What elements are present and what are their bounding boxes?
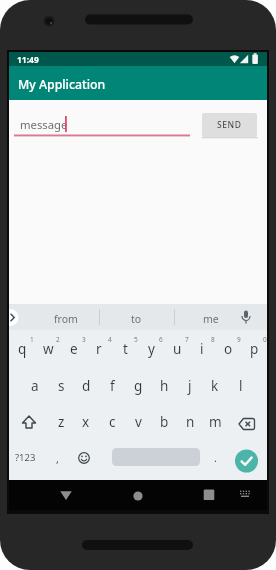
button[interactable]: a bbox=[20, 375, 50, 397]
staticText: me bbox=[203, 312, 219, 326]
staticText: z bbox=[58, 413, 65, 431]
button[interactable]: j bbox=[175, 375, 205, 397]
button[interactable]: 7 bbox=[172, 328, 202, 350]
staticText: 8 bbox=[211, 335, 215, 344]
staticText: 1 bbox=[30, 335, 34, 344]
button[interactable]: 2 bbox=[43, 328, 73, 350]
staticText: k bbox=[211, 377, 219, 395]
staticText: from bbox=[54, 312, 78, 326]
staticText: , bbox=[56, 451, 59, 466]
staticText: f bbox=[110, 377, 115, 395]
staticText: 4 bbox=[108, 335, 112, 344]
button[interactable]: u bbox=[162, 338, 192, 360]
staticText: message bbox=[20, 117, 68, 132]
button[interactable]: x bbox=[71, 411, 101, 433]
staticText: o bbox=[224, 340, 233, 358]
button[interactable]: s bbox=[46, 375, 76, 397]
button[interactable]: , bbox=[42, 447, 72, 469]
staticText: 7 bbox=[185, 335, 189, 344]
button[interactable]: ?123 bbox=[10, 446, 40, 468]
staticText: s bbox=[58, 377, 65, 395]
staticText: b bbox=[160, 413, 169, 431]
staticText: c bbox=[109, 413, 116, 431]
button[interactable]: SEND bbox=[202, 113, 257, 137]
staticText: My Application bbox=[18, 76, 106, 93]
staticText: x bbox=[82, 413, 90, 431]
staticText: . bbox=[214, 450, 217, 465]
button[interactable]: k bbox=[200, 375, 230, 397]
staticText: u bbox=[173, 340, 182, 358]
staticText: d bbox=[82, 377, 91, 395]
staticText: 11:49 bbox=[17, 54, 39, 66]
button[interactable]: q bbox=[7, 338, 37, 360]
staticText: w bbox=[43, 340, 54, 358]
staticText: g bbox=[134, 377, 143, 395]
button[interactable]: 8 bbox=[198, 328, 228, 350]
staticText: p bbox=[250, 340, 259, 358]
button[interactable]: d bbox=[71, 375, 101, 397]
button[interactable]: 3 bbox=[69, 328, 99, 350]
staticText: 2 bbox=[56, 335, 60, 344]
staticText: 9 bbox=[237, 335, 241, 344]
button[interactable]: 1 bbox=[17, 328, 47, 350]
staticText: m bbox=[209, 413, 222, 431]
staticText: 5 bbox=[134, 335, 138, 344]
staticText: 6 bbox=[159, 335, 163, 344]
staticText: 0 bbox=[263, 335, 267, 344]
button[interactable]: g bbox=[123, 375, 153, 397]
staticText: to bbox=[131, 312, 142, 326]
staticText: y bbox=[148, 340, 155, 358]
button[interactable]: l bbox=[226, 375, 256, 397]
button[interactable]: e bbox=[59, 338, 89, 360]
button[interactable]: 5 bbox=[121, 328, 151, 350]
button[interactable]: h bbox=[149, 375, 179, 397]
button[interactable]: 0 bbox=[250, 328, 276, 350]
staticText: h bbox=[160, 377, 169, 395]
staticText: n bbox=[186, 413, 195, 431]
button[interactable] bbox=[235, 450, 258, 473]
staticText: 3 bbox=[82, 335, 86, 344]
staticText: e bbox=[70, 340, 78, 358]
staticText: i bbox=[200, 340, 204, 358]
button[interactable]: m bbox=[200, 411, 230, 433]
button[interactable]: z bbox=[46, 411, 76, 433]
button[interactable] bbox=[231, 480, 261, 510]
button[interactable]: 6 bbox=[146, 328, 176, 350]
staticText: a bbox=[31, 377, 39, 395]
button[interactable]: r bbox=[84, 338, 114, 360]
staticText: SEND bbox=[217, 119, 242, 131]
button[interactable]: b bbox=[149, 411, 179, 433]
staticText: v bbox=[135, 413, 142, 431]
staticText: q bbox=[18, 340, 27, 358]
button[interactable]: i bbox=[187, 338, 217, 360]
staticText: t bbox=[123, 340, 128, 358]
button[interactable]: f bbox=[97, 375, 127, 397]
button[interactable] bbox=[112, 448, 200, 466]
staticText: r bbox=[96, 340, 102, 358]
button[interactable] bbox=[51, 480, 81, 510]
button[interactable]: t bbox=[110, 338, 140, 360]
button[interactable]: to bbox=[121, 308, 151, 330]
button[interactable]: . bbox=[200, 446, 230, 468]
button[interactable]: p bbox=[239, 338, 269, 360]
button[interactable]: w bbox=[33, 338, 63, 360]
button[interactable]: 9 bbox=[224, 328, 254, 350]
staticText: ?123 bbox=[15, 451, 36, 464]
staticText: l bbox=[239, 377, 243, 395]
button[interactable]: c bbox=[97, 411, 127, 433]
button[interactable] bbox=[9, 108, 199, 148]
button[interactable]: 4 bbox=[95, 328, 125, 350]
button[interactable]: n bbox=[175, 411, 205, 433]
button[interactable] bbox=[189, 480, 219, 510]
button[interactable]: from bbox=[51, 308, 81, 330]
button[interactable] bbox=[123, 480, 153, 510]
button[interactable]: o bbox=[213, 338, 243, 360]
button[interactable]: v bbox=[123, 411, 153, 433]
button[interactable]: me bbox=[196, 308, 226, 330]
button[interactable]: y bbox=[136, 338, 166, 360]
staticText: j bbox=[188, 377, 192, 395]
